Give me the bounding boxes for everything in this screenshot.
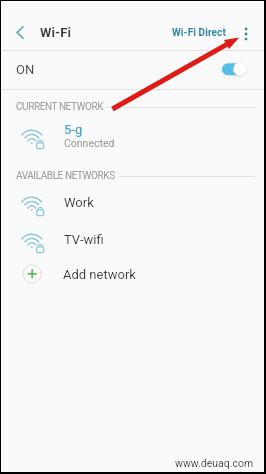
staticText: ON bbox=[16, 62, 35, 77]
button[interactable] bbox=[1, 259, 264, 295]
button[interactable]: Wi-Fi Direct bbox=[167, 23, 231, 43]
button[interactable]: Wi-Fi on bbox=[220, 60, 250, 78]
button[interactable] bbox=[1, 223, 264, 259]
staticText: Wi-Fi bbox=[40, 25, 72, 40]
button[interactable] bbox=[1, 116, 264, 160]
button[interactable] bbox=[1, 186, 264, 222]
button[interactable]: Back bbox=[6, 19, 33, 46]
button[interactable]: More options bbox=[233, 21, 259, 47]
staticText: CURRENT NETWORK bbox=[16, 101, 104, 113]
staticText: Add network bbox=[63, 267, 136, 282]
staticText: Connected bbox=[64, 137, 115, 149]
staticText: Wi-Fi Direct bbox=[172, 27, 226, 39]
staticText: AVAILABLE NETWORKS bbox=[16, 170, 115, 182]
button[interactable] bbox=[1, 51, 264, 89]
staticText: TV-wifi bbox=[64, 232, 104, 247]
staticText: Work bbox=[64, 195, 94, 210]
staticText: www.deuaq.com bbox=[175, 457, 254, 469]
staticText: 5-g bbox=[64, 122, 83, 137]
